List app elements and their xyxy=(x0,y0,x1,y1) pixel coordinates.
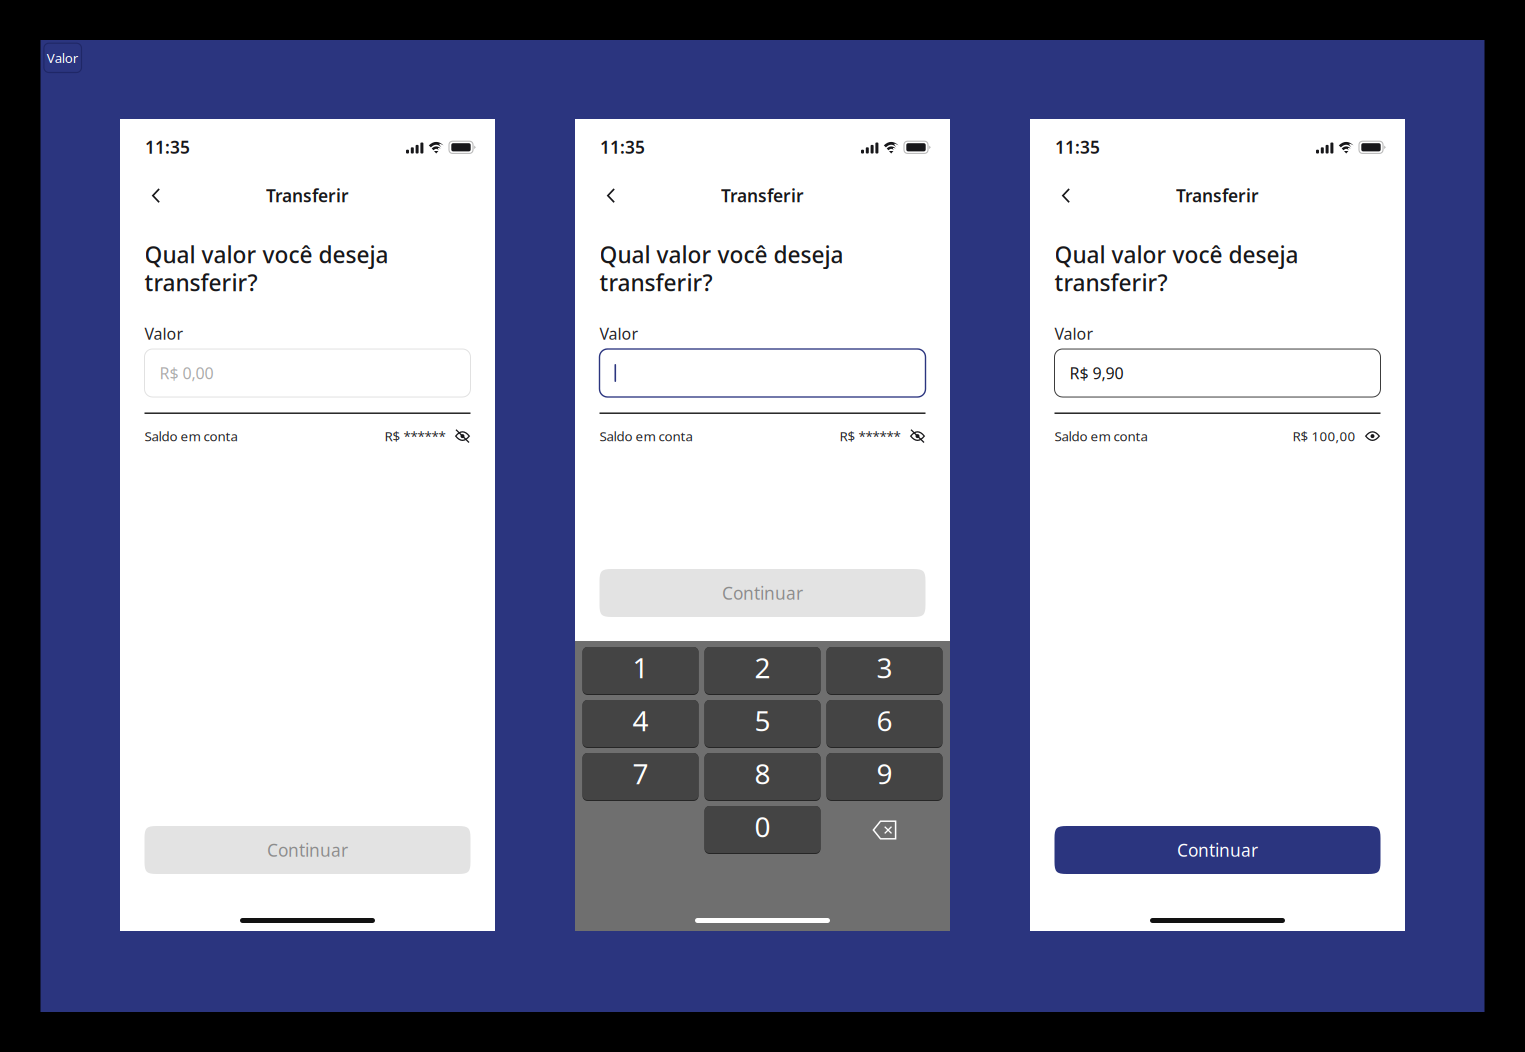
staticText: 5 xyxy=(754,702,770,739)
button[interactable]: Ocultar saldo xyxy=(1364,428,1380,445)
staticText: Valor xyxy=(47,49,79,67)
staticText: 6 xyxy=(876,702,892,739)
staticText: transferir? xyxy=(1054,267,1167,298)
staticText: 9 xyxy=(876,755,892,792)
staticText: Transferir xyxy=(266,184,349,207)
staticText: R$ ****** xyxy=(384,427,445,445)
staticText: 7 xyxy=(632,755,648,792)
staticText: Continuar xyxy=(722,581,803,604)
button[interactable]: 4 xyxy=(582,700,698,748)
staticText: 1 xyxy=(632,649,648,686)
staticText: 3 xyxy=(876,649,892,686)
staticText: R$ 9,90 xyxy=(1069,362,1123,384)
staticText: Transferir xyxy=(1176,184,1259,207)
staticText: Valor xyxy=(1054,323,1093,344)
button[interactable]: Mostrar saldo xyxy=(454,428,470,445)
staticText: 4 xyxy=(632,702,648,739)
button[interactable]: 1 xyxy=(582,647,698,695)
staticText: Valor xyxy=(599,323,638,344)
staticText: Saldo em conta xyxy=(1054,427,1147,445)
staticText: Transferir xyxy=(721,184,804,207)
button[interactable]: 6 xyxy=(826,700,942,748)
staticText: transferir? xyxy=(599,267,712,298)
button[interactable]: 5 xyxy=(704,700,820,748)
button[interactable]: Mostrar saldo xyxy=(909,428,925,445)
button[interactable]: 2 xyxy=(704,647,820,695)
staticText: 11:35 xyxy=(145,136,190,159)
button[interactable]: Continuar xyxy=(599,569,925,617)
staticText: Qual valor você deseja xyxy=(1054,239,1298,270)
button[interactable]: Voltar xyxy=(1049,179,1083,213)
staticText: Qual valor você deseja xyxy=(144,239,388,270)
button[interactable]: Continuar xyxy=(1054,826,1380,874)
staticText: 8 xyxy=(754,755,770,792)
staticText: Continuar xyxy=(267,838,348,861)
button[interactable]: 7 xyxy=(582,753,698,801)
staticText: 0 xyxy=(754,808,770,845)
button[interactable]: Voltar xyxy=(594,179,628,213)
staticText: R$ ****** xyxy=(839,427,900,445)
button[interactable]: Voltar xyxy=(139,179,173,213)
staticText: 11:35 xyxy=(600,136,645,159)
staticText: R$ 100,00 xyxy=(1292,427,1355,445)
staticText: 11:35 xyxy=(1055,136,1100,159)
button[interactable]: 3 xyxy=(826,647,942,695)
staticText: Qual valor você deseja xyxy=(599,239,843,270)
button[interactable]: 9 xyxy=(826,753,942,801)
staticText: R$ 0,00 xyxy=(159,362,213,384)
button[interactable]: 8 xyxy=(704,753,820,801)
staticText: Saldo em conta xyxy=(599,427,692,445)
staticText: Valor xyxy=(144,323,183,344)
staticText: Saldo em conta xyxy=(144,427,237,445)
staticText: transferir? xyxy=(144,267,257,298)
button[interactable]: Apagar xyxy=(826,806,942,854)
button[interactable]: Continuar xyxy=(144,826,470,874)
staticText: 2 xyxy=(754,649,770,686)
staticText: Continuar xyxy=(1177,838,1258,861)
button[interactable]: 0 xyxy=(704,806,820,854)
